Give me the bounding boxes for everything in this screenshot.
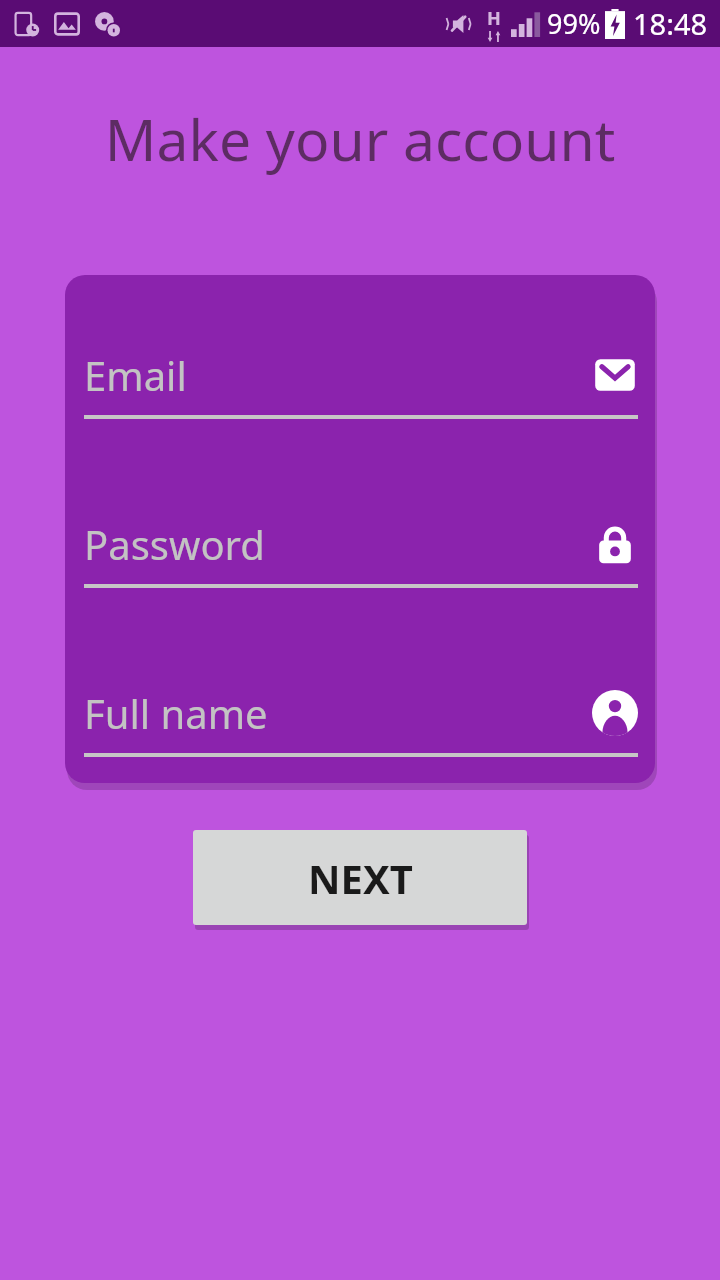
button[interactable]: NEXT <box>193 830 527 925</box>
staticText: H <box>487 6 501 31</box>
staticText: NEXT <box>308 851 413 905</box>
staticText: Make your account <box>0 100 720 178</box>
staticText: 18:48 <box>633 4 708 43</box>
button[interactable]: Full name <box>84 685 638 757</box>
other: Email <box>592 352 638 398</box>
staticText: 99% <box>547 5 601 42</box>
button[interactable]: Password <box>84 516 638 588</box>
button[interactable]: Email <box>84 347 638 419</box>
staticText: Password <box>84 517 592 571</box>
staticText: Email <box>84 348 592 402</box>
other: Full name <box>592 690 638 736</box>
staticText: Full name <box>84 686 592 740</box>
other: Password <box>592 521 638 567</box>
